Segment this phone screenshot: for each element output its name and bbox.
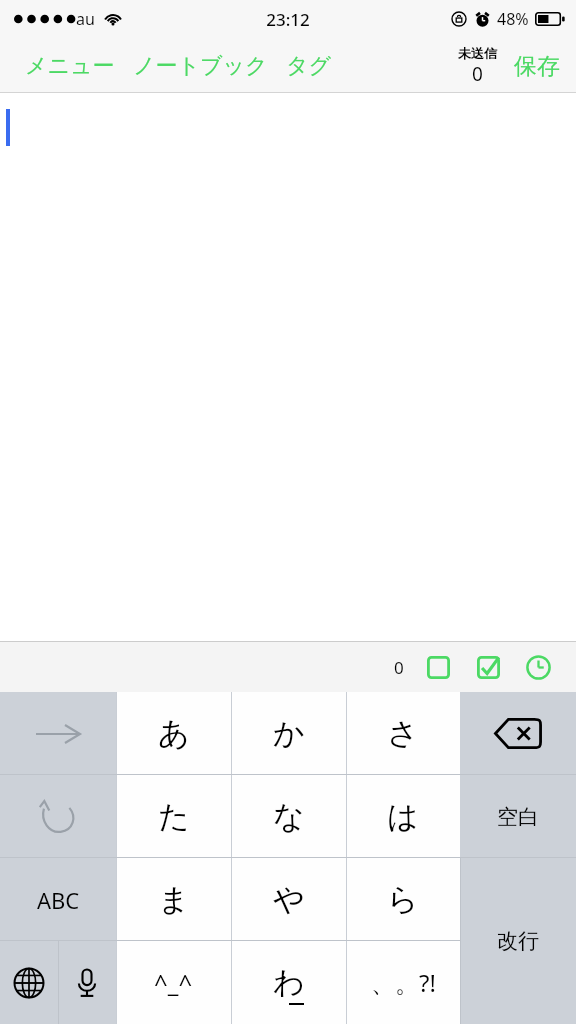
button[interactable]: Voice input: [58, 941, 116, 1024]
staticText: 0: [472, 61, 483, 87]
button[interactable]: ノートブック: [133, 52, 268, 80]
button[interactable]: Checked checkbox: [470, 649, 506, 685]
button[interactable]: タグ: [286, 52, 332, 80]
staticText: 23:12: [266, 8, 310, 31]
staticText: 改行: [497, 928, 539, 954]
button[interactable]: ら: [346, 858, 460, 941]
button[interactable]: ABC: [0, 858, 116, 941]
staticText: 48%: [497, 8, 529, 30]
staticText: ま: [158, 880, 190, 919]
button[interactable]: ^_^: [116, 941, 231, 1024]
button[interactable]: や: [231, 858, 346, 941]
staticText: 空白: [497, 804, 539, 830]
button[interactable]: Backspace: [460, 692, 576, 775]
button[interactable]: わ: [231, 941, 346, 1024]
staticText: は: [387, 797, 419, 836]
staticText: 未送信: [458, 45, 497, 61]
staticText: ノートブック: [133, 52, 268, 80]
button[interactable]: 空白: [460, 775, 576, 858]
button[interactable]: Next: [0, 692, 116, 775]
button[interactable]: た: [116, 775, 231, 858]
button[interactable]: あ: [116, 692, 231, 775]
button[interactable]: Change keyboard: [0, 941, 58, 1024]
staticText: タグ: [286, 52, 332, 80]
button[interactable]: 保存: [514, 52, 560, 81]
button[interactable]: メニュー: [25, 52, 115, 80]
staticText: あ: [158, 714, 190, 753]
staticText: さ: [387, 714, 419, 753]
staticText: 、。?!: [371, 966, 436, 999]
staticText: た: [158, 797, 190, 836]
staticText: au: [76, 8, 95, 30]
staticText: 0: [394, 656, 404, 679]
button[interactable]: 未送信: [456, 45, 499, 87]
button[interactable]: か: [231, 692, 346, 775]
button[interactable]: な: [231, 775, 346, 858]
button[interactable]: Recent history: [520, 649, 556, 685]
button[interactable]: 、。?!: [346, 941, 460, 1024]
staticText: や: [273, 880, 305, 919]
staticText: わ: [273, 963, 305, 1002]
staticText: か: [273, 714, 305, 753]
staticText: な: [273, 797, 305, 836]
staticText: 保存: [514, 52, 560, 81]
staticText: ABC: [37, 885, 80, 915]
button[interactable]: Empty checkbox: [420, 649, 456, 685]
button[interactable]: Undo: [0, 775, 116, 858]
button[interactable]: は: [346, 775, 460, 858]
button[interactable]: 改行: [460, 858, 576, 1024]
staticText: ら: [387, 880, 419, 919]
staticText: ^_^: [154, 966, 193, 999]
button[interactable]: ま: [116, 858, 231, 941]
staticText: メニュー: [25, 52, 115, 80]
button[interactable]: さ: [346, 692, 460, 775]
